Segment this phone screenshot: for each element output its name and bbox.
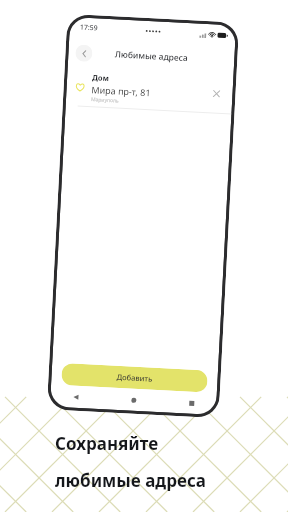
staticText: Добавить <box>116 372 153 384</box>
staticText: Мира пр-т, 81 <box>91 83 152 98</box>
staticText: Дом <box>92 72 109 83</box>
button[interactable]: Удалить <box>209 86 224 101</box>
button[interactable]: Назад <box>75 44 93 62</box>
staticText: любимые адреса <box>55 469 206 492</box>
button[interactable]: Добавить <box>61 363 208 393</box>
staticText: Любимые адреса <box>114 48 189 64</box>
button[interactable]: Назад <box>68 389 83 404</box>
button[interactable]: Обзор <box>184 395 199 410</box>
staticText: Мариуполь <box>91 96 119 105</box>
button[interactable]: Дом <box>66 67 233 113</box>
staticText: Сохраняйте <box>55 432 159 455</box>
button[interactable]: Домой <box>126 392 141 407</box>
staticText: 17:59 <box>79 22 98 33</box>
